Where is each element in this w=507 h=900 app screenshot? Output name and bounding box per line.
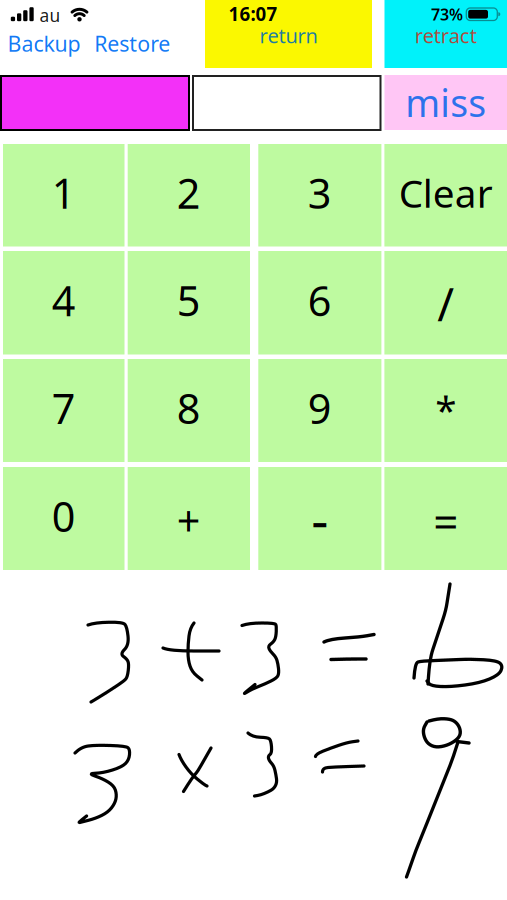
staticText: Backup xyxy=(7,29,80,58)
staticText: au xyxy=(39,4,60,27)
button[interactable]: 6 xyxy=(258,251,381,354)
staticText: return xyxy=(259,22,317,49)
button[interactable]: miss xyxy=(384,75,507,130)
button[interactable]: = xyxy=(384,467,507,570)
staticText: 8 xyxy=(177,381,201,435)
staticText: 73% xyxy=(431,4,463,25)
staticText: 2 xyxy=(177,165,201,220)
button[interactable]: 2 xyxy=(128,144,250,246)
button[interactable]: Backup xyxy=(7,29,80,58)
staticText: Restore xyxy=(94,29,170,58)
button[interactable]: 3 xyxy=(258,144,381,246)
button[interactable] xyxy=(0,75,190,131)
button[interactable]: 5 xyxy=(128,251,250,354)
staticText: / xyxy=(437,274,454,334)
button[interactable]: 7 xyxy=(3,359,124,462)
button[interactable]: - xyxy=(258,467,381,570)
staticText: 3 xyxy=(308,165,332,220)
button[interactable]: 1 xyxy=(3,144,124,246)
staticText: 6 xyxy=(308,273,332,328)
button[interactable]: return xyxy=(205,0,372,68)
staticText: Clear xyxy=(399,167,493,218)
button[interactable]: * xyxy=(384,359,507,462)
staticText: 9 xyxy=(308,381,332,435)
staticText: 16:07 xyxy=(228,1,277,26)
staticText: 4 xyxy=(52,273,76,328)
staticText: * xyxy=(435,384,456,435)
button[interactable]: Clear xyxy=(384,144,507,246)
button[interactable]: 4 xyxy=(3,251,124,354)
staticText: 7 xyxy=(52,381,76,435)
button[interactable] xyxy=(192,75,381,131)
button[interactable]: / xyxy=(384,251,507,354)
staticText: 0 xyxy=(52,489,76,543)
staticText: retract xyxy=(415,22,477,49)
staticText: miss xyxy=(405,78,486,127)
staticText: 1 xyxy=(52,165,76,220)
staticText: 5 xyxy=(177,273,201,328)
button[interactable]: 8 xyxy=(128,359,250,462)
button[interactable]: retract xyxy=(384,0,507,68)
staticText: - xyxy=(311,483,328,554)
staticText: = xyxy=(433,492,458,551)
button[interactable]: Restore xyxy=(94,29,170,58)
staticText: + xyxy=(177,493,201,548)
button[interactable]: 0 xyxy=(3,467,124,570)
button[interactable]: + xyxy=(128,467,250,570)
button[interactable]: 9 xyxy=(258,359,381,462)
